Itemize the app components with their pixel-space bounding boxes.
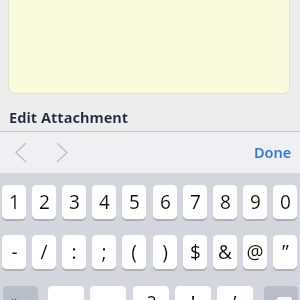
staticText: 1 [9, 189, 20, 215]
staticText: 5 [129, 189, 140, 215]
staticText: ? [147, 290, 156, 300]
staticText: ” [282, 239, 289, 265]
button[interactable]: - [2, 235, 26, 269]
button[interactable]: 8 [213, 185, 237, 219]
button[interactable]: 2 [32, 185, 56, 219]
button[interactable]: 1 [2, 185, 26, 219]
button[interactable]: ? [133, 286, 169, 300]
button[interactable]: $ [183, 235, 207, 269]
button[interactable]: #+= [3, 286, 38, 300]
button[interactable]: 7 [183, 185, 207, 219]
staticText: #+= [9, 294, 33, 300]
button[interactable]: & [213, 235, 237, 269]
button[interactable]: 5 [122, 185, 146, 219]
button[interactable]: 4 [92, 185, 116, 219]
staticText: 0 [280, 189, 291, 215]
button[interactable]: 0 [273, 185, 297, 219]
button[interactable]: : [62, 235, 86, 269]
button[interactable]: . [48, 286, 84, 300]
staticText: ’ [233, 290, 237, 300]
staticText: 6 [160, 189, 171, 215]
button[interactable]: 9 [243, 185, 267, 219]
button[interactable]: ( [122, 235, 146, 269]
button[interactable]: @ [243, 235, 267, 269]
button[interactable]: Previous field [2, 131, 39, 173]
button[interactable]: 6 [153, 185, 177, 219]
button[interactable]: , [90, 286, 126, 300]
staticText: 2 [39, 189, 50, 215]
staticText: 3 [69, 189, 80, 215]
button[interactable]: 3 [62, 185, 86, 219]
button[interactable]: / [32, 235, 56, 269]
staticText: : [71, 239, 77, 265]
staticText: 8 [220, 189, 231, 215]
button[interactable]: Done [240, 131, 300, 173]
staticText: $ [190, 239, 201, 265]
button[interactable]: ’ [217, 286, 253, 300]
staticText: 7 [190, 189, 201, 215]
staticText: ) [162, 239, 168, 265]
staticText: ( [131, 239, 137, 265]
button[interactable]: ” [273, 235, 297, 269]
button[interactable]: ! [175, 286, 211, 300]
staticText: Done [254, 142, 292, 162]
staticText: 4 [99, 189, 110, 215]
staticText: ; [101, 239, 107, 265]
staticText: ! [190, 290, 196, 300]
button[interactable]: Delete [264, 286, 298, 300]
staticText: / [40, 239, 48, 265]
staticText: & [218, 239, 232, 265]
button[interactable]: ; [92, 235, 116, 269]
staticText: - [11, 239, 18, 265]
staticText: 9 [250, 189, 261, 215]
button[interactable]: ) [153, 235, 177, 269]
staticText: @ [246, 239, 264, 265]
staticText: Edit Attachment [9, 107, 129, 127]
button[interactable]: Next field [43, 131, 80, 173]
